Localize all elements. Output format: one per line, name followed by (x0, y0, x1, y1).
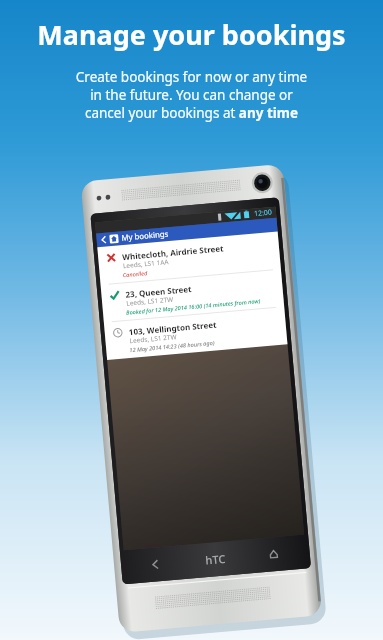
button[interactable]: Manage your bookings promo (0, 0, 383, 640)
